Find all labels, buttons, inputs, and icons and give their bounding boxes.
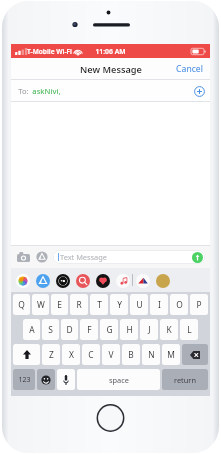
staticText: E bbox=[57, 299, 62, 310]
staticText: 123 bbox=[18, 375, 31, 385]
staticText: Z bbox=[49, 349, 54, 360]
staticText: R bbox=[76, 299, 82, 310]
staticText: F bbox=[87, 324, 92, 335]
button[interactable]: F bbox=[80, 319, 98, 340]
staticText: U bbox=[136, 299, 143, 310]
button[interactable]: A bbox=[23, 319, 40, 340]
button[interactable]: Shift bbox=[13, 344, 40, 365]
button[interactable]: C bbox=[82, 344, 100, 365]
staticText: askNivi, bbox=[32, 86, 61, 96]
button[interactable]: B bbox=[122, 344, 140, 365]
button[interactable]: Q bbox=[13, 294, 30, 315]
staticText: M bbox=[167, 349, 175, 360]
button[interactable]: G bbox=[100, 319, 118, 340]
button[interactable]: V bbox=[102, 344, 120, 365]
button[interactable]: Y bbox=[110, 294, 128, 315]
button[interactable]: Cancel bbox=[169, 58, 210, 80]
button[interactable]: D bbox=[61, 319, 78, 340]
button[interactable]: Backspace bbox=[182, 344, 208, 365]
button[interactable]: P bbox=[190, 294, 208, 315]
button[interactable]: Z bbox=[42, 344, 60, 365]
staticText: G bbox=[106, 324, 113, 335]
button[interactable]: 123 bbox=[13, 369, 35, 390]
button[interactable]: Add contact bbox=[188, 80, 210, 102]
button[interactable]: Dictate bbox=[57, 369, 75, 390]
staticText: space bbox=[109, 375, 129, 385]
button[interactable]: iMessage app bbox=[115, 273, 130, 288]
staticText: J bbox=[148, 324, 151, 335]
staticText: W bbox=[37, 299, 45, 310]
button[interactable]: K bbox=[160, 319, 178, 340]
staticText: B bbox=[128, 349, 134, 360]
button[interactable]: X bbox=[62, 344, 80, 365]
staticText: A bbox=[29, 324, 35, 335]
staticText: To: bbox=[18, 86, 29, 96]
button[interactable]: O bbox=[170, 294, 188, 315]
staticText: I bbox=[158, 299, 161, 310]
staticText: T-Mobile Wi-Fi bbox=[27, 47, 72, 56]
button[interactable]: Send bbox=[192, 252, 203, 263]
button[interactable]: E bbox=[51, 294, 68, 315]
staticText: P bbox=[196, 299, 202, 310]
button[interactable]: S bbox=[42, 319, 59, 340]
button[interactable]: iMessage app bbox=[135, 273, 150, 288]
button[interactable]: I bbox=[150, 294, 168, 315]
button[interactable]: H bbox=[120, 319, 138, 340]
button[interactable]: N bbox=[142, 344, 160, 365]
button[interactable]: R bbox=[70, 294, 88, 315]
button[interactable]: space bbox=[77, 369, 160, 390]
staticText: New Message bbox=[80, 63, 142, 76]
button[interactable]: Text Message bbox=[53, 250, 205, 264]
staticText: X bbox=[69, 349, 74, 360]
staticText: L bbox=[187, 324, 192, 335]
staticText: Y bbox=[117, 299, 122, 310]
staticText: 11:06 AM bbox=[95, 47, 126, 56]
button[interactable]: Camera bbox=[16, 249, 31, 264]
button[interactable]: M bbox=[162, 344, 180, 365]
button[interactable]: iMessage app bbox=[35, 273, 50, 288]
button[interactable]: return bbox=[162, 369, 208, 390]
staticText: Text Message bbox=[60, 252, 107, 262]
staticText: O bbox=[176, 299, 183, 310]
staticText: Q bbox=[18, 299, 25, 310]
button[interactable]: W bbox=[32, 294, 49, 315]
button[interactable]: App Store bbox=[34, 249, 49, 264]
button[interactable]: U bbox=[130, 294, 148, 315]
staticText: V bbox=[108, 349, 114, 360]
button[interactable]: iMessage app bbox=[75, 273, 90, 288]
staticText: N bbox=[148, 349, 155, 360]
button[interactable]: J bbox=[140, 319, 158, 340]
button[interactable]: iMessage app bbox=[155, 273, 170, 288]
button[interactable]: T bbox=[90, 294, 108, 315]
staticText: H bbox=[126, 324, 133, 335]
staticText: D bbox=[66, 324, 73, 335]
button[interactable]: iMessage app bbox=[15, 273, 30, 288]
staticText: T bbox=[97, 299, 102, 310]
button[interactable]: iMessage app bbox=[95, 273, 110, 288]
staticText: C bbox=[88, 349, 94, 360]
button[interactable]: Emoji bbox=[37, 369, 55, 390]
button[interactable]: iMessage app bbox=[55, 273, 70, 288]
staticText: Cancel bbox=[176, 63, 203, 75]
staticText: K bbox=[166, 324, 172, 335]
staticText: S bbox=[48, 324, 53, 335]
staticText: return bbox=[174, 375, 196, 385]
button[interactable]: L bbox=[180, 319, 198, 340]
